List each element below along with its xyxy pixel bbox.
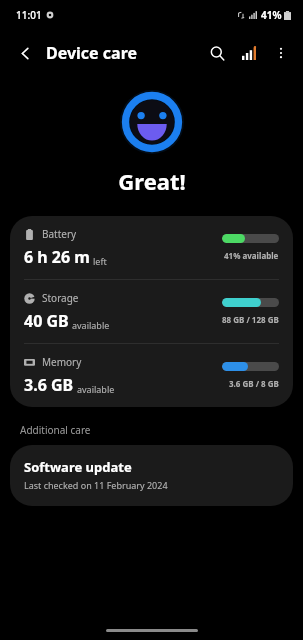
staticText: left	[93, 255, 107, 267]
button[interactable]: Software update	[10, 445, 293, 506]
staticText: 3.6 GB / 8 GB	[229, 378, 279, 389]
staticText: 41% available	[224, 250, 279, 261]
staticText: 41%	[261, 8, 282, 22]
button[interactable]: Back	[8, 36, 42, 70]
staticText: 88 GB / 128 GB	[222, 314, 279, 325]
staticText: Battery	[42, 227, 77, 241]
button[interactable]: Search	[201, 37, 233, 69]
staticText: Software update	[24, 458, 132, 476]
staticText: 3.6 GB	[24, 374, 74, 396]
staticText: Device care	[46, 42, 138, 64]
staticText: Memory	[42, 355, 82, 369]
button[interactable]: Battery	[10, 216, 293, 279]
staticText: Additional care	[20, 423, 91, 437]
button[interactable]: More options	[265, 37, 297, 69]
button[interactable]: Memory	[10, 344, 293, 407]
staticText: Storage	[42, 291, 79, 305]
button[interactable]: Diagnostics	[233, 37, 265, 69]
staticText: available	[72, 319, 110, 331]
staticText: 40 GB	[24, 310, 69, 332]
staticText: Last checked on 11 February 2024	[24, 479, 168, 491]
staticText: 11:01	[16, 8, 42, 22]
staticText: 6 h 26 m	[24, 246, 90, 268]
staticText: Great!	[118, 166, 186, 196]
button[interactable]: Storage	[10, 280, 293, 343]
staticText: available	[77, 383, 115, 395]
